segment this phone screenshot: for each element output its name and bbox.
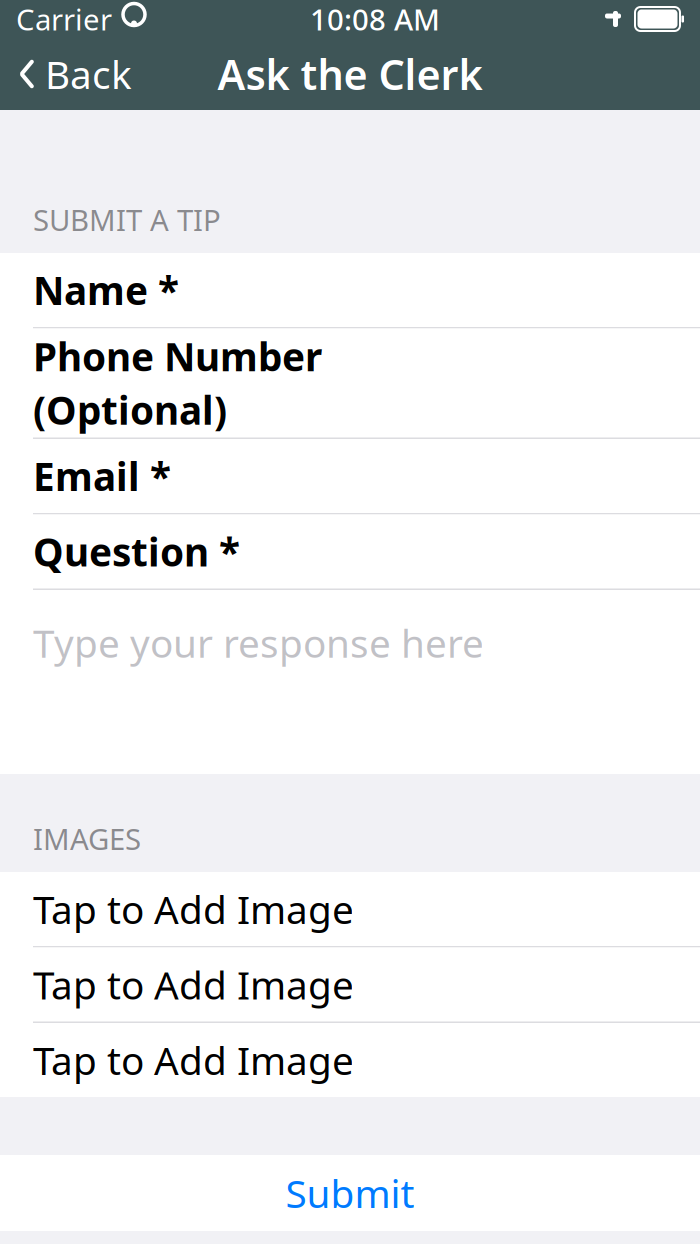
staticText: Phone Number — [33, 331, 322, 382]
button[interactable]: Tap to Add Image — [0, 947, 700, 1021]
staticText: Submit — [285, 1167, 414, 1219]
staticText: IMAGES — [33, 819, 141, 858]
staticText: Tap to Add Image — [33, 1034, 354, 1086]
staticText: Name * — [33, 264, 179, 316]
button[interactable]: Tap to Add Image — [0, 1023, 700, 1097]
staticText: Tap to Add Image — [33, 883, 354, 935]
button[interactable]: Submit — [0, 1155, 700, 1231]
staticText: Type your response here — [33, 617, 484, 668]
button[interactable]: Type your response here — [0, 590, 700, 774]
staticText: (Optional) — [33, 384, 227, 435]
button[interactable]: Name * — [0, 253, 700, 327]
staticText: Back — [45, 48, 132, 100]
button[interactable]: Phone Number — [0, 328, 700, 437]
button[interactable]: Question * — [0, 514, 700, 588]
staticText: Carrier — [16, 0, 112, 38]
staticText: 10:08 AM — [310, 0, 440, 38]
staticText: Question * — [33, 526, 240, 577]
staticText: Ask the Clerk — [217, 47, 482, 101]
staticText: Email * — [33, 450, 171, 502]
button[interactable]: Back — [0, 38, 150, 110]
staticText: Tap to Add Image — [33, 959, 354, 1010]
button[interactable]: Tap to Add Image — [0, 872, 700, 946]
button[interactable]: Email * — [0, 439, 700, 513]
staticText: SUBMIT A TIP — [33, 200, 221, 239]
